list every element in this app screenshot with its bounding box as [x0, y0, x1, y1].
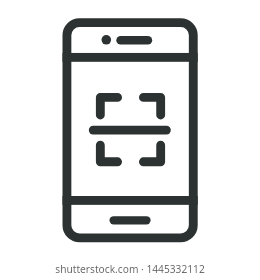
- staticText: shutterstock.com · 1445332112: [0, 262, 260, 276]
- button[interactable]: Scan code with phone: [0, 0, 260, 280]
